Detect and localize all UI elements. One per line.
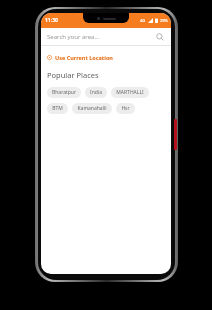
- staticText: Bharatpur: [52, 89, 76, 96]
- button[interactable]: Kamanahalli: [72, 103, 112, 114]
- button[interactable]: Hsr: [116, 103, 135, 114]
- staticText: Use Current Location: [55, 54, 113, 61]
- button[interactable]: Bharatpur: [47, 87, 81, 98]
- staticText: India: [90, 89, 102, 96]
- staticText: 11:30: [45, 17, 58, 24]
- staticText: Hsr: [121, 105, 130, 112]
- staticText: MARTHALLI: [116, 89, 144, 96]
- staticText: 4G: [140, 18, 146, 23]
- staticText: BTM: [52, 105, 63, 112]
- staticText: Kamanahalli: [77, 105, 107, 112]
- button[interactable]: Search your area...: [41, 28, 171, 45]
- staticText: Popular Places: [47, 70, 99, 80]
- button[interactable]: India: [85, 87, 107, 98]
- staticText: 29%: [160, 18, 168, 23]
- button[interactable]: Use Current Location: [41, 52, 171, 63]
- button[interactable]: MARTHALLI: [111, 87, 149, 98]
- button[interactable]: BTM: [47, 103, 68, 114]
- other: Power button: [174, 119, 177, 150]
- staticText: Search your area...: [47, 33, 100, 41]
- button[interactable]: Search: [154, 31, 165, 42]
